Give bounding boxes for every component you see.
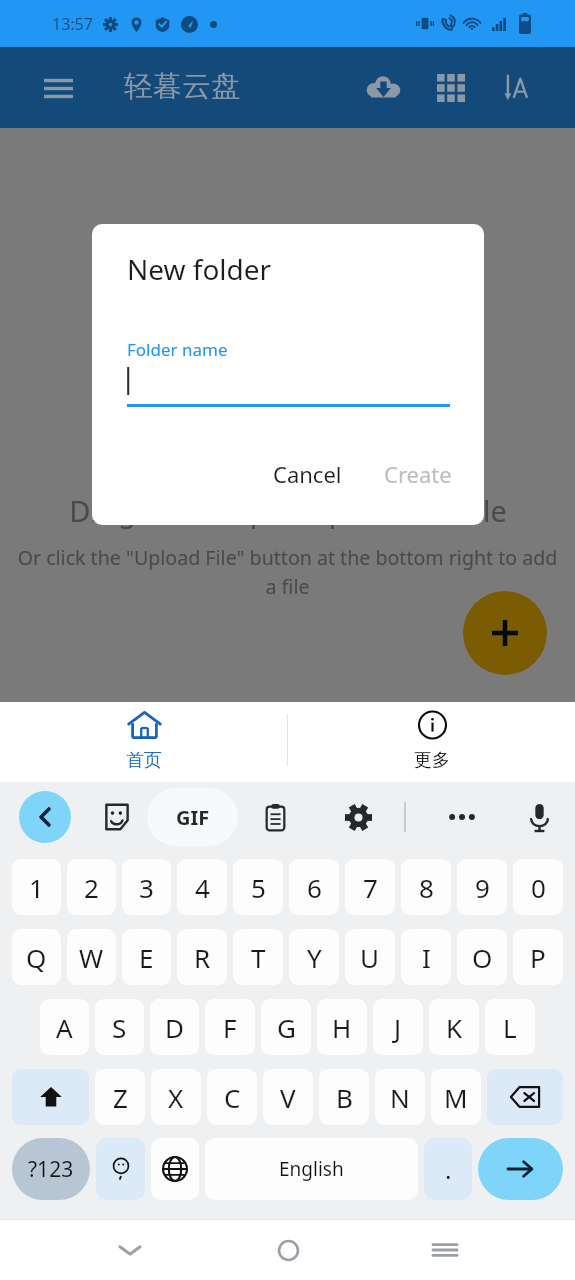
button[interactable]: M — [431, 1069, 481, 1125]
staticText: B — [336, 1080, 353, 1115]
staticText: 7 — [363, 870, 378, 905]
staticText: L — [503, 1010, 517, 1045]
staticText: 1 — [29, 870, 44, 905]
button[interactable]: O — [457, 929, 507, 985]
staticText: New folder — [127, 250, 272, 288]
button[interactable]: Enter — [478, 1138, 563, 1200]
button[interactable]: 5 — [233, 859, 283, 915]
staticText: Q — [26, 940, 47, 975]
button[interactable]: S — [95, 999, 144, 1055]
button[interactable]: Voice input — [517, 795, 561, 839]
staticText: 6 — [307, 870, 322, 905]
staticText: U — [360, 940, 380, 975]
button[interactable]: Grid view — [429, 66, 473, 110]
staticText: 首页 — [126, 749, 162, 772]
button[interactable]: T — [233, 929, 283, 985]
button[interactable]: . — [424, 1138, 472, 1200]
button[interactable]: H — [317, 999, 367, 1055]
staticText: ?123 — [28, 1155, 74, 1184]
button[interactable]: Recent apps — [418, 1223, 472, 1277]
button[interactable]: W — [67, 929, 116, 985]
staticText: X — [168, 1080, 184, 1115]
staticText: Y — [307, 940, 322, 975]
button[interactable]: Change language — [151, 1138, 199, 1200]
button[interactable]: GIF — [147, 788, 238, 846]
staticText: M — [444, 1080, 468, 1115]
staticText: Drag and drop to upload the file — [69, 491, 507, 530]
button[interactable]: G — [261, 999, 311, 1055]
staticText: Z — [113, 1080, 128, 1115]
staticText: N — [390, 1080, 410, 1115]
button[interactable]: Y — [289, 929, 339, 985]
button[interactable]: Settings — [336, 795, 380, 839]
button[interactable]: I — [401, 929, 451, 985]
button[interactable]: Emoji — [96, 1138, 145, 1200]
button[interactable]: A — [40, 999, 89, 1055]
button[interactable]: Cancel — [263, 449, 352, 499]
button[interactable]: 3 — [122, 859, 171, 915]
staticText: 9 — [475, 870, 490, 905]
button[interactable]: 4 — [177, 859, 227, 915]
button[interactable]: Clipboard — [253, 795, 297, 839]
staticText: GIF — [176, 804, 210, 831]
button[interactable]: J — [373, 999, 423, 1055]
button[interactable]: Shift — [12, 1069, 89, 1125]
button[interactable]: 8 — [401, 859, 451, 915]
staticText: 5 — [251, 870, 266, 905]
button[interactable]: V — [263, 1069, 313, 1125]
button[interactable]: U — [345, 929, 395, 985]
button[interactable]: 9 — [457, 859, 507, 915]
button[interactable]: 1 — [12, 859, 61, 915]
button[interactable]: Stickers — [95, 795, 139, 839]
staticText: D — [165, 1010, 184, 1045]
button[interactable]: R — [177, 929, 227, 985]
staticText: 轻暮云盘 — [124, 68, 240, 105]
staticText: P — [530, 940, 546, 975]
button[interactable]: 首页 — [0, 702, 287, 782]
button[interactable]: Z — [95, 1069, 145, 1125]
button[interactable]: Back — [19, 791, 71, 843]
button[interactable]: Upload File — [463, 591, 547, 675]
button[interactable]: X — [151, 1069, 201, 1125]
staticText: J — [394, 1010, 402, 1045]
button[interactable]: Home — [261, 1223, 315, 1277]
staticText: 2 — [84, 870, 99, 905]
button[interactable]: F — [205, 999, 255, 1055]
button[interactable]: P — [513, 929, 563, 985]
button[interactable]: 0 — [513, 859, 563, 915]
staticText: W — [79, 940, 104, 975]
staticText: Create — [384, 459, 452, 489]
button[interactable]: Backspace — [487, 1069, 563, 1125]
staticText: H — [332, 1010, 352, 1045]
button[interactable]: N — [375, 1069, 425, 1125]
button[interactable]: More options — [440, 795, 484, 839]
button[interactable]: K — [429, 999, 479, 1055]
staticText: K — [446, 1010, 463, 1045]
button[interactable]: D — [150, 999, 199, 1055]
button[interactable]: 7 — [345, 859, 395, 915]
button[interactable]: Sort — [493, 65, 537, 109]
button[interactable]: B — [319, 1069, 369, 1125]
staticText: 4 — [195, 870, 210, 905]
button[interactable]: 更多 — [288, 702, 575, 782]
button[interactable]: 2 — [67, 859, 116, 915]
button[interactable]: C — [207, 1069, 257, 1125]
button[interactable]: E — [122, 929, 171, 985]
button[interactable]: Menu — [36, 66, 80, 110]
staticText: O — [472, 940, 493, 975]
button[interactable]: Hide keyboard — [103, 1223, 157, 1277]
staticText: Or click the "Upload File" button at the… — [0, 544, 575, 600]
staticText: . — [445, 1153, 452, 1186]
staticText: F — [223, 1010, 237, 1045]
button[interactable]: Q — [12, 929, 61, 985]
button[interactable]: English — [205, 1138, 418, 1200]
button[interactable]: Create — [374, 449, 462, 499]
staticText: S — [112, 1010, 127, 1045]
button[interactable]: L — [485, 999, 535, 1055]
button[interactable]: ?123 — [12, 1138, 90, 1200]
staticText: 3 — [139, 870, 154, 905]
button[interactable]: Download — [361, 66, 405, 110]
staticText: Cancel — [273, 459, 342, 489]
button[interactable]: 6 — [289, 859, 339, 915]
staticText: Folder name — [127, 338, 228, 361]
